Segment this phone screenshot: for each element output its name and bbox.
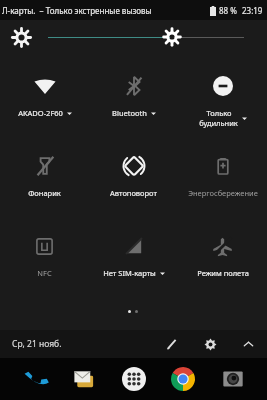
staticText: AKADO-2F60 bbox=[18, 108, 63, 118]
staticText: Ср, 21 нояб. bbox=[12, 338, 62, 350]
button[interactable]: Do not disturb bbox=[178, 60, 267, 140]
button[interactable]: Brightness bbox=[0, 24, 267, 50]
button[interactable]: Collapse bbox=[239, 335, 257, 353]
staticText: Нет SIM-карты bbox=[103, 268, 156, 278]
staticText: будильник bbox=[199, 118, 238, 128]
other: Wi-Fi bbox=[34, 75, 56, 97]
button[interactable]: Battery saver bbox=[178, 140, 267, 220]
staticText: Только bbox=[206, 108, 232, 118]
other: Bluetooth bbox=[123, 75, 145, 97]
other: Mobile data bbox=[124, 236, 144, 256]
button[interactable]: Flashlight bbox=[0, 140, 89, 220]
button[interactable]: Auto-rotate bbox=[89, 140, 178, 220]
button[interactable]: Chrome bbox=[168, 364, 198, 394]
button[interactable]: NFC bbox=[0, 220, 89, 300]
button[interactable]: Wi-Fi bbox=[0, 60, 89, 140]
staticText: Энергосбережение bbox=[188, 188, 258, 198]
other: Airplane mode bbox=[212, 236, 233, 257]
button[interactable]: Edit bbox=[163, 335, 181, 353]
staticText: 23:19 bbox=[242, 5, 263, 16]
staticText: Режим полета bbox=[197, 268, 249, 278]
staticText: Фонарик bbox=[28, 188, 61, 198]
button[interactable]: Mobile data bbox=[89, 220, 178, 300]
button[interactable]: Settings bbox=[201, 335, 219, 353]
other: NFC bbox=[35, 237, 54, 256]
staticText: 88 % bbox=[219, 5, 237, 16]
other: Brightness bbox=[13, 29, 30, 46]
other: Auto-rotate bbox=[123, 155, 145, 177]
staticText: NFC bbox=[37, 268, 52, 278]
button[interactable]: Bluetooth bbox=[89, 60, 178, 140]
button[interactable]: Email bbox=[69, 364, 99, 394]
button[interactable]: Apps bbox=[119, 364, 149, 394]
staticText: Bluetooth bbox=[112, 108, 147, 118]
button[interactable]: Phone bbox=[20, 364, 50, 394]
staticText: Автоповорот bbox=[110, 188, 157, 198]
button[interactable]: Airplane mode bbox=[178, 220, 267, 300]
staticText: Л-карты. – Только экстренные вызовы bbox=[2, 5, 152, 16]
other: Battery saver bbox=[213, 156, 233, 176]
button[interactable]: Camera bbox=[218, 364, 248, 394]
other: Flashlight bbox=[34, 155, 56, 177]
other: Do not disturb bbox=[213, 76, 233, 96]
